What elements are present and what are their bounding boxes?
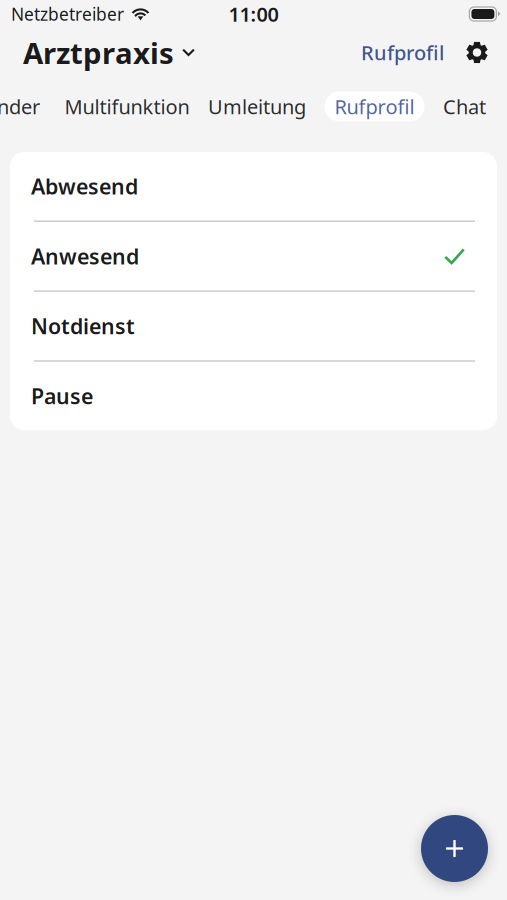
button[interactable]: Hinzufügen	[421, 815, 488, 882]
button[interactable]: Notdienst	[10, 292, 497, 360]
button[interactable]: Rufprofil	[324, 91, 424, 121]
staticText: Chat	[443, 93, 486, 120]
staticText: Netzbetreiber	[11, 2, 124, 25]
staticText: Multifunktion	[64, 93, 189, 120]
button[interactable]: Anwesend	[10, 222, 497, 290]
staticText: 11:00	[228, 1, 278, 27]
staticText: Rufprofil	[361, 39, 444, 66]
button[interactable]: Multifunktion	[64, 91, 189, 121]
button[interactable]: Pause	[10, 362, 497, 430]
staticText: Abwesend	[31, 172, 138, 200]
staticText: Rufprofil	[334, 93, 414, 120]
staticText: Notdienst	[31, 312, 135, 340]
staticText: Umleitung	[208, 93, 306, 120]
staticText: Arztpraxis	[23, 33, 174, 72]
button[interactable]: Abwesend	[10, 152, 497, 220]
button[interactable]: Umleitung	[208, 91, 306, 121]
button[interactable]: Einstellungen	[444, 41, 488, 63]
staticText: Pause	[31, 382, 93, 410]
staticText: nder	[0, 93, 40, 120]
button[interactable]: Arztpraxis	[23, 33, 195, 72]
button[interactable]: Rufprofil	[361, 39, 444, 66]
staticText: Anwesend	[31, 242, 139, 270]
